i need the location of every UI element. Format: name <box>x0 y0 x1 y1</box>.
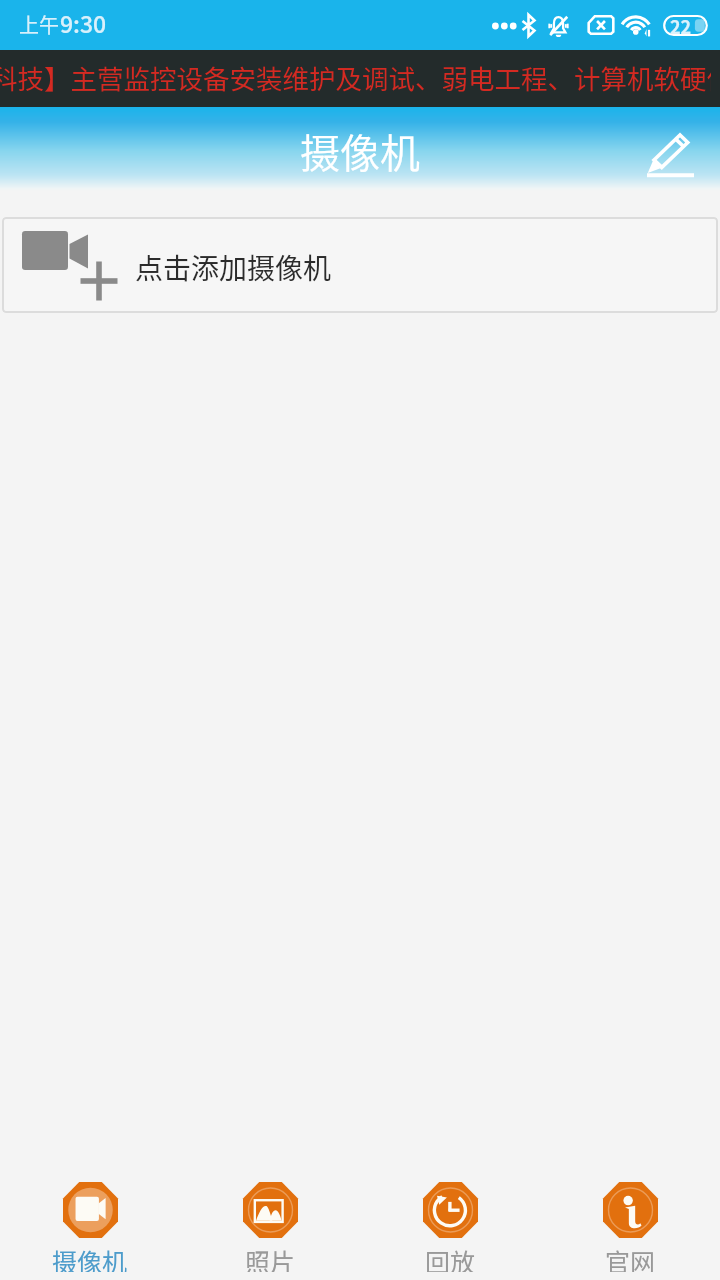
staticText: 摄像机 <box>300 122 420 180</box>
button[interactable]: 摄像机 <box>0 1182 180 1272</box>
button[interactable]: 点击添加摄像机 <box>2 217 718 313</box>
button[interactable]: 回放 <box>360 1182 540 1272</box>
button[interactable]: Edit <box>638 121 702 185</box>
button[interactable]: 官网 <box>540 1182 720 1272</box>
staticText: 点击添加摄像机 <box>135 247 332 288</box>
staticText: 上午 <box>19 10 59 39</box>
staticText: 官网 <box>605 1243 656 1272</box>
staticText: 摄像机 <box>52 1243 128 1272</box>
staticText: 回放 <box>425 1243 476 1272</box>
staticText: 22 <box>670 13 692 38</box>
staticText: 9:30 <box>60 6 107 39</box>
button[interactable]: 照片 <box>180 1182 360 1272</box>
staticText: 科技】主营监控设备安装维护及调试、弱电工程、计算机软硬件 <box>0 58 711 96</box>
staticText: 照片 <box>245 1243 296 1272</box>
